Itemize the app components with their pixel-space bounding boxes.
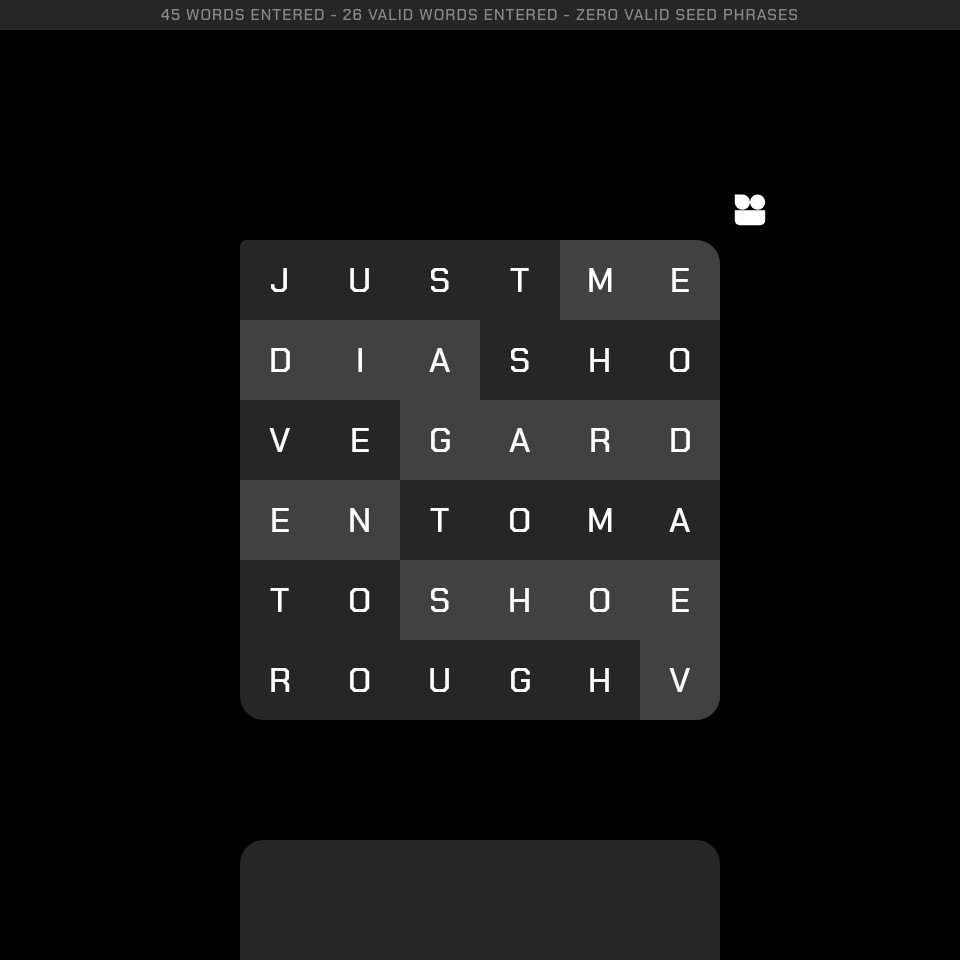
staticText: G <box>429 418 452 462</box>
staticText: T <box>430 498 450 542</box>
button[interactable]: R <box>560 400 640 480</box>
button[interactable]: S <box>400 240 480 320</box>
button[interactable]: R <box>240 640 320 720</box>
button[interactable]: S <box>400 560 480 640</box>
button[interactable]: G <box>400 400 480 480</box>
staticText: D <box>269 338 292 382</box>
staticText: A <box>509 418 531 462</box>
button[interactable]: M <box>560 480 640 560</box>
staticText: R <box>269 658 292 702</box>
button[interactable]: U <box>400 640 480 720</box>
staticText: T <box>270 578 290 622</box>
staticText: V <box>269 418 291 462</box>
button[interactable]: T <box>240 560 320 640</box>
button[interactable]: V <box>640 640 720 720</box>
staticText: S <box>509 338 531 382</box>
staticText: M <box>587 258 614 302</box>
staticText: S <box>429 258 451 302</box>
staticText: E <box>270 498 291 542</box>
staticText: O <box>348 658 372 702</box>
button[interactable]: J <box>240 240 320 320</box>
button[interactable]: D <box>240 320 320 400</box>
staticText: O <box>668 338 692 382</box>
button[interactable]: U <box>320 240 400 320</box>
staticText: U <box>428 658 452 702</box>
staticText: O <box>508 498 532 542</box>
staticText: H <box>588 658 612 702</box>
staticText: U <box>348 258 372 302</box>
button[interactable]: E <box>640 560 720 640</box>
button[interactable]: I <box>320 320 400 400</box>
button[interactable]: H <box>560 320 640 400</box>
button[interactable]: O <box>320 640 400 720</box>
button[interactable]: E <box>320 400 400 480</box>
staticText: O <box>588 578 612 622</box>
staticText: N <box>348 498 372 542</box>
staticText: E <box>350 418 371 462</box>
button[interactable]: A <box>400 320 480 400</box>
staticText: E <box>670 578 691 622</box>
button[interactable]: V <box>240 400 320 480</box>
button[interactable]: Players <box>730 190 770 230</box>
staticText: S <box>429 578 451 622</box>
button[interactable]: H <box>560 640 640 720</box>
staticText: H <box>508 578 532 622</box>
button[interactable]: G <box>480 640 560 720</box>
staticText: 45 WORDS ENTERED - 26 VALID WORDS ENTERE… <box>161 5 799 25</box>
button[interactable]: E <box>640 240 720 320</box>
staticText: A <box>429 338 451 382</box>
staticText: G <box>509 658 532 702</box>
staticText: I <box>356 338 365 382</box>
button[interactable]: S <box>480 320 560 400</box>
staticText: E <box>670 258 691 302</box>
staticText: V <box>669 658 691 702</box>
staticText: H <box>588 338 612 382</box>
staticText: A <box>669 498 691 542</box>
staticText: R <box>589 418 612 462</box>
button[interactable]: T <box>480 240 560 320</box>
button[interactable]: O <box>480 480 560 560</box>
button[interactable]: A <box>480 400 560 480</box>
button[interactable]: E <box>240 480 320 560</box>
staticText: J <box>270 258 290 302</box>
button[interactable]: H <box>480 560 560 640</box>
button[interactable]: O <box>320 560 400 640</box>
button[interactable]: N <box>320 480 400 560</box>
button[interactable]: O <box>560 560 640 640</box>
staticText: D <box>669 418 692 462</box>
staticText: O <box>348 578 372 622</box>
button[interactable]: M <box>560 240 640 320</box>
staticText: M <box>587 498 614 542</box>
staticText: T <box>510 258 530 302</box>
button[interactable]: D <box>640 400 720 480</box>
button[interactable]: 45 WORDS ENTERED - 26 VALID WORDS ENTERE… <box>0 0 960 30</box>
button[interactable]: T <box>400 480 480 560</box>
button[interactable]: A <box>640 480 720 560</box>
button[interactable]: O <box>640 320 720 400</box>
